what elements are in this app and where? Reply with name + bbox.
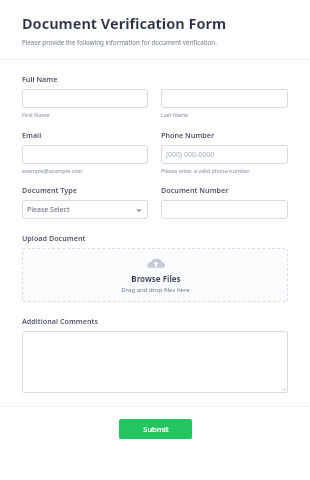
staticText: Additional Comments xyxy=(22,316,99,326)
staticText: (000) 000-0000 xyxy=(166,150,215,160)
staticText: Submit xyxy=(143,424,169,434)
button[interactable]: Document Type selector xyxy=(22,200,148,219)
button[interactable]: Phone Number xyxy=(161,145,288,164)
button[interactable]: Submit xyxy=(119,419,192,439)
staticText: Please enter a valid phone number. xyxy=(161,167,250,174)
button[interactable]: Last Name xyxy=(161,89,288,108)
staticText: Drag and drop files here xyxy=(121,286,190,294)
staticText: Phone Number xyxy=(161,130,215,140)
staticText: Browse Files xyxy=(131,273,181,284)
button[interactable]: Additional Comments xyxy=(22,331,288,393)
button[interactable]: Email xyxy=(22,145,148,164)
staticText: First Name xyxy=(22,111,50,118)
staticText: Email xyxy=(22,130,42,140)
staticText: Last Name xyxy=(161,111,188,118)
button[interactable]: Browse files to upload document xyxy=(22,248,288,302)
staticText: Please Select xyxy=(27,205,70,215)
button[interactable]: First Name xyxy=(22,89,148,108)
staticText: example@example.com xyxy=(22,167,83,174)
staticText: Document Type xyxy=(22,185,77,195)
staticText: Please provide the following information… xyxy=(22,38,217,46)
staticText: Document Verification Form xyxy=(22,13,227,33)
staticText: Upload Document xyxy=(22,233,86,243)
staticText: Full Name xyxy=(22,74,58,84)
staticText: Document Number xyxy=(161,185,229,195)
button[interactable]: Document Number xyxy=(161,200,288,219)
